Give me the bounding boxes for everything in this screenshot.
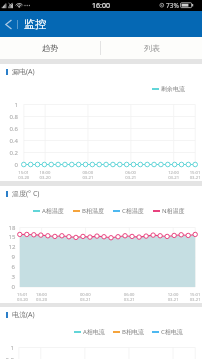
button[interactable]: Back [0,11,17,37]
staticText: 温度(° C) [12,189,40,199]
staticText: 列表 [144,43,160,53]
staticText: N相温度 [162,207,185,215]
staticText: 漏电(A) [12,67,35,77]
button[interactable]: 趋势 [0,37,100,59]
button[interactable]: 列表 [101,37,202,59]
staticText: 73% [166,1,179,10]
staticText: 趋势 [42,43,58,53]
staticText: 电流(A) [12,310,35,320]
staticText: A相温度 [42,207,64,215]
staticText: 16:00 [92,1,110,11]
staticText: C相电流 [161,328,183,336]
staticText: 剩余电流 [161,85,185,93]
staticText: B相电流 [122,328,144,336]
staticText: C相温度 [122,207,144,215]
staticText: B相温度 [82,207,104,215]
staticText: A相电流 [83,328,105,336]
staticText: 监控 [24,17,46,31]
